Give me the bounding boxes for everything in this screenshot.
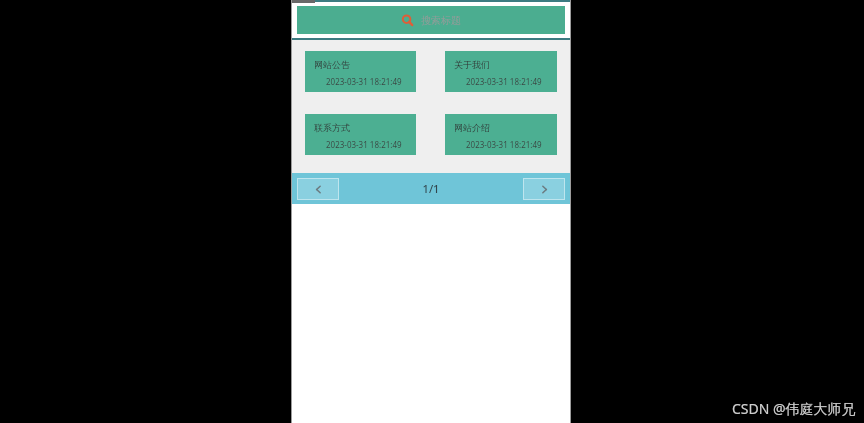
- staticText: 关于我们: [454, 59, 490, 70]
- staticText: 搜索标题: [421, 14, 461, 27]
- button[interactable]: 网站公告: [305, 51, 416, 92]
- staticText: 网站介绍: [454, 122, 490, 133]
- button[interactable]: Previous page: [297, 178, 339, 200]
- staticText: 2023-03-31 18:21:49: [326, 76, 402, 86]
- button[interactable]: Next page: [523, 178, 565, 200]
- staticText: 2023-03-31 18:21:49: [466, 76, 542, 86]
- staticText: CSDN @伟庭大师兄: [732, 399, 856, 418]
- staticText: 1/1: [339, 181, 523, 196]
- button[interactable]: 网站介绍: [445, 114, 557, 155]
- button[interactable]: 搜索标题: [297, 6, 565, 34]
- staticText: 2023-03-31 18:21:49: [466, 139, 542, 149]
- staticText: 2023-03-31 18:21:49: [326, 139, 402, 149]
- button[interactable]: 联系方式: [305, 114, 416, 155]
- button[interactable]: 关于我们: [445, 51, 557, 92]
- staticText: 联系方式: [314, 122, 350, 133]
- staticText: 网站公告: [314, 59, 350, 70]
